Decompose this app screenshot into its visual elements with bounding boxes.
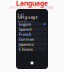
button[interactable]: Spanish: [17, 27, 47, 31]
staticText: German: [19, 36, 34, 42]
staticText: French: [19, 31, 31, 37]
button[interactable]: Japanese: [17, 42, 47, 46]
staticText: Chinese: [19, 46, 33, 52]
staticText: 9:41: [18, 14, 25, 17]
staticText: Japanese: [19, 41, 34, 47]
button[interactable]: English: [17, 22, 47, 26]
staticText: Spanish: [19, 26, 32, 32]
staticText: Language: [16, 0, 48, 8]
button[interactable]: German: [17, 37, 47, 41]
button[interactable]: French: [17, 32, 47, 36]
staticText: Select your preferred language: [10, 6, 54, 9]
button[interactable]: Chinese: [17, 47, 47, 51]
staticText: Language Settings: [18, 14, 38, 25]
staticText: English: [19, 21, 31, 27]
